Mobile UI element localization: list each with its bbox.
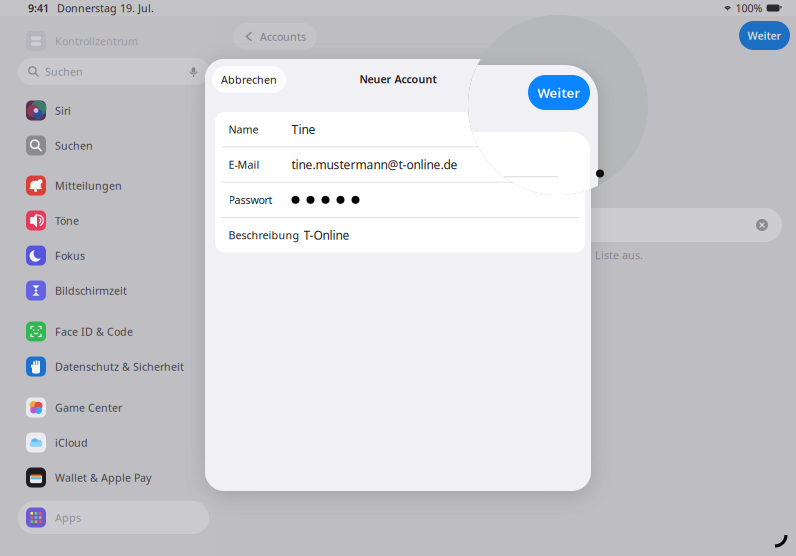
- staticText: Donnerstag 19. Jul.: [57, 1, 154, 15]
- button[interactable]: Apps: [18, 501, 209, 534]
- staticText: Game Center: [55, 400, 122, 415]
- staticText: Apps: [55, 510, 81, 525]
- staticText: Name: [228, 122, 258, 136]
- button[interactable]: Weiter: [739, 21, 790, 50]
- staticText: T-Online: [303, 227, 349, 243]
- staticText: Siri: [55, 103, 71, 118]
- staticText: Weiter: [747, 28, 781, 43]
- staticText: 9:41: [28, 1, 49, 15]
- button[interactable]: iCloud: [18, 426, 209, 459]
- staticText: Mitteilungen: [55, 178, 122, 193]
- button[interactable]: Töne: [18, 204, 209, 237]
- staticText: E-Mail: [228, 157, 259, 172]
- button[interactable]: Fokus: [18, 239, 209, 272]
- staticText: Beschreibung: [228, 228, 299, 242]
- button[interactable]: Clear text: [756, 219, 782, 231]
- staticText: Abbrechen: [221, 72, 277, 87]
- staticText: Liste aus.: [595, 248, 643, 262]
- button[interactable]: Mitteilungen: [18, 169, 209, 202]
- button[interactable]: Bildschirmzeit: [18, 274, 209, 307]
- staticText: iCloud: [55, 435, 88, 450]
- staticText: Tine: [291, 121, 315, 137]
- staticText: Kontrollzentrum: [55, 34, 138, 48]
- button[interactable]: Suchen: [18, 129, 209, 162]
- staticText: Datenschutz & Sicherheit: [55, 359, 184, 374]
- staticText: Passwort: [228, 193, 272, 207]
- button[interactable]: Accounts: [233, 23, 317, 50]
- staticText: Face ID & Code: [55, 324, 133, 339]
- staticText: Suchen: [45, 64, 83, 79]
- button[interactable]: Datenschutz & Sicherheit: [18, 350, 209, 383]
- staticText: Neuer Account: [359, 72, 436, 86]
- button[interactable]: Siri: [18, 94, 209, 127]
- staticText: Accounts: [260, 29, 306, 44]
- staticText: 100%: [736, 1, 763, 15]
- staticText: Fokus: [55, 248, 85, 263]
- button[interactable]: Face ID & Code: [18, 315, 209, 348]
- staticText: Töne: [55, 213, 79, 228]
- staticText: Bildschirmzeit: [55, 283, 127, 298]
- staticText: tine.mustermann@t-online.de: [291, 157, 457, 172]
- button[interactable]: Suchen: [18, 58, 209, 85]
- button[interactable]: Wallet & Apple Pay: [18, 461, 209, 494]
- staticText: Weiter: [537, 84, 580, 101]
- button[interactable]: Game Center: [18, 391, 209, 424]
- button[interactable]: Abbrechen: [212, 66, 286, 93]
- staticText: Suchen: [55, 138, 93, 153]
- staticText: Wallet & Apple Pay: [55, 470, 151, 485]
